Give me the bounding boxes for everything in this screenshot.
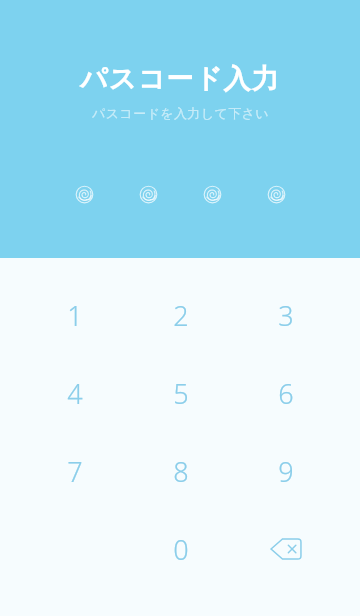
button[interactable]: 0	[128, 510, 233, 588]
staticText: 8	[173, 453, 189, 490]
staticText: 6	[278, 375, 294, 412]
button[interactable]: 2	[128, 276, 233, 354]
staticText: 7	[67, 453, 83, 490]
staticText: パスコードを入力して下さい	[92, 105, 269, 121]
staticText: 1	[67, 297, 83, 334]
button[interactable]: 9	[233, 432, 338, 510]
button[interactable]: 6	[233, 354, 338, 432]
staticText: パスコード入力	[80, 62, 280, 96]
staticText: 2	[173, 297, 189, 334]
button[interactable]: 1	[22, 276, 128, 354]
staticText: 3	[278, 297, 294, 334]
button[interactable]: Backspace	[233, 510, 338, 588]
button[interactable]: 8	[128, 432, 233, 510]
staticText: 5	[173, 375, 189, 412]
button[interactable]: 7	[22, 432, 128, 510]
button[interactable]: 3	[233, 276, 338, 354]
staticText: 0	[173, 531, 189, 568]
staticText: 9	[278, 453, 294, 490]
staticText: 4	[67, 375, 83, 412]
button[interactable]: 5	[128, 354, 233, 432]
button[interactable]: 4	[22, 354, 128, 432]
